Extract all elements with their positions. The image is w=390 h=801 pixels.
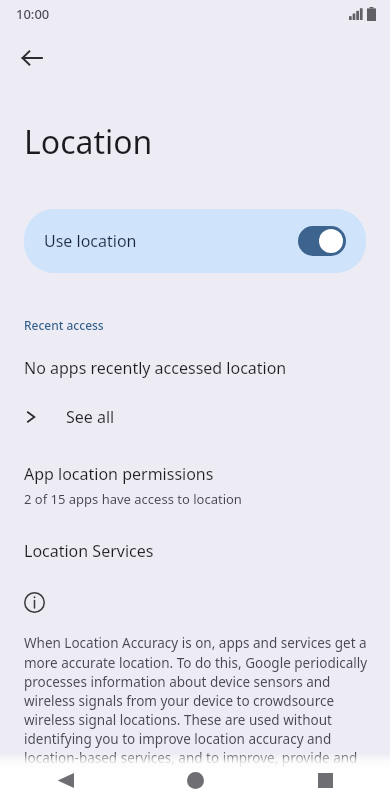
button[interactable]: Back — [8, 34, 56, 82]
staticText: Recent access — [24, 317, 104, 333]
button[interactable]: Home — [130, 759, 260, 801]
staticText: 2 of 15 apps have access to location — [24, 490, 242, 508]
button[interactable]: Recent apps — [260, 759, 390, 801]
staticText: Location Services — [24, 540, 154, 562]
staticText: Location — [24, 120, 153, 164]
button[interactable]: App location permissions — [0, 463, 390, 508]
staticText: Use location — [44, 230, 137, 252]
staticText: When Location Accuracy is on, apps and s… — [24, 634, 368, 801]
staticText: See all — [66, 406, 115, 428]
staticText: App location permissions — [24, 463, 214, 485]
other: Information — [24, 592, 45, 613]
staticText: No apps recently accessed location — [24, 357, 287, 379]
button[interactable]: Location Services — [0, 540, 390, 562]
button[interactable]: Use location — [24, 209, 366, 273]
button[interactable]: Back — [0, 759, 130, 801]
staticText: 10:00 — [16, 5, 50, 23]
button[interactable]: See all — [0, 395, 390, 439]
